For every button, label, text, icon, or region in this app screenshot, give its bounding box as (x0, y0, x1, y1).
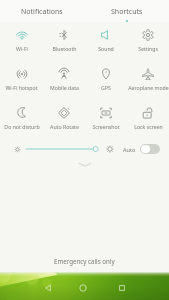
button[interactable]: Sound (85, 22, 127, 61)
staticText: Lock screen (134, 123, 163, 130)
staticText: Mobile data (50, 84, 79, 91)
staticText: GPS (101, 84, 111, 91)
button[interactable]: Settings (127, 22, 169, 61)
staticText: Sound (98, 45, 114, 52)
staticText: Wi-Fi (16, 45, 28, 52)
staticText: Emergency calls only (54, 257, 115, 265)
button[interactable]: Auto brightness (140, 144, 160, 154)
button[interactable]: Mobile data (43, 61, 85, 100)
staticText: Shortcuts (111, 7, 143, 17)
button[interactable]: Do not disturb (0, 100, 43, 139)
button[interactable]: Wi-Fi hotspot (0, 61, 43, 100)
button[interactable]: Auto Rotate (43, 100, 85, 139)
button[interactable]: Aeroplane mode (127, 61, 169, 100)
button[interactable]: Bluetooth (43, 22, 85, 61)
button[interactable]: Back (38, 278, 58, 298)
staticText: Aeroplane mode (128, 84, 169, 91)
button[interactable]: GPS (85, 61, 127, 100)
staticText: Auto (123, 146, 136, 153)
staticText: Do not disturb (4, 123, 40, 130)
button[interactable]: Lock screen (127, 100, 169, 139)
button[interactable]: Recent apps (112, 278, 132, 298)
button[interactable]: Notifications (0, 0, 84, 22)
staticText: Bluetooth (52, 45, 77, 52)
staticText: Wi-Fi hotspot (5, 84, 38, 91)
staticText: Settings (138, 45, 158, 52)
staticText: Auto Rotate (50, 123, 79, 130)
button[interactable]: Wi-Fi (0, 22, 43, 61)
staticText: Screenshot (92, 123, 120, 130)
staticText: Notifications (21, 7, 63, 17)
button[interactable]: Shortcuts (84, 0, 169, 22)
button[interactable]: Home (73, 278, 93, 298)
button[interactable]: Screenshot (85, 100, 127, 139)
